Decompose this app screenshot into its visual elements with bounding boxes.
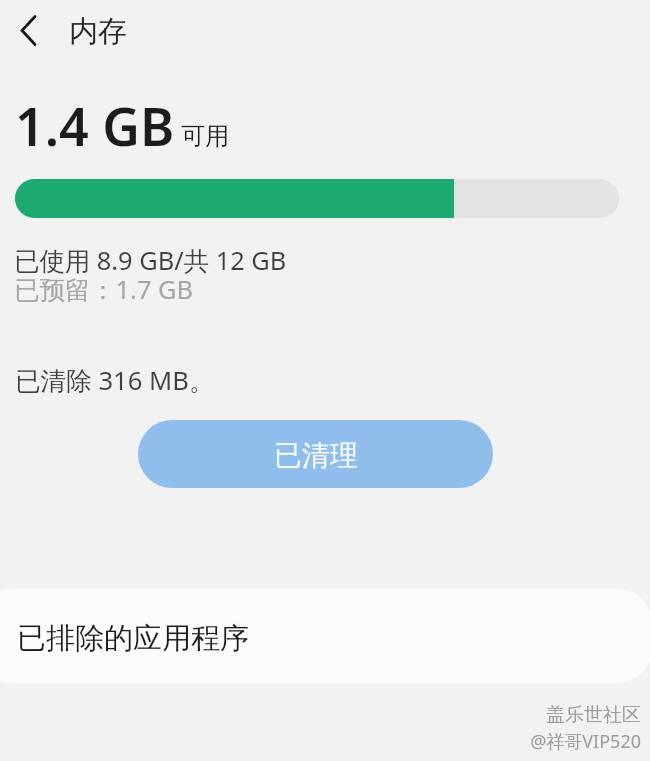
staticText: 1.4 GB — [15, 90, 175, 161]
staticText: 已排除的应用程序 — [17, 620, 249, 657]
button[interactable]: 已排除的应用程序 — [0, 589, 650, 683]
button[interactable]: 已清理 — [138, 420, 493, 488]
staticText: 内存 — [69, 13, 127, 50]
staticText: 可用 — [181, 121, 229, 151]
staticText: @祥哥VIP520 — [530, 729, 641, 754]
button[interactable]: Back — [5, 5, 51, 55]
staticText: 已清除 316 MB。 — [15, 363, 215, 398]
staticText: 已使用 8.9 GB/共 12 GB — [14, 243, 287, 278]
staticText: 已清理 — [274, 438, 358, 473]
staticText: 盖乐世社区 — [546, 703, 641, 727]
staticText: 已预留：1.7 GB — [14, 272, 194, 307]
